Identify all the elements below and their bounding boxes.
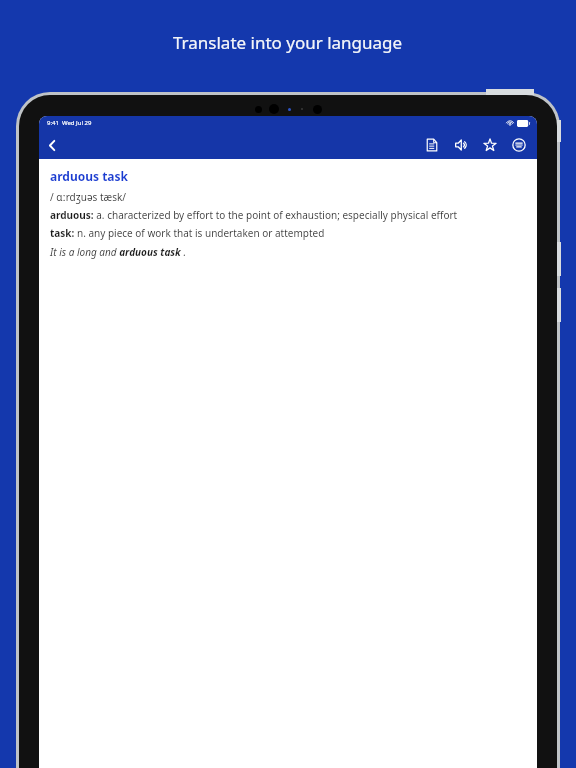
- button[interactable]: Favorite: [478, 133, 502, 157]
- staticText: It is a long and arduous task .: [50, 245, 186, 259]
- button[interactable]: Document: [420, 133, 444, 157]
- button[interactable]: Back: [39, 132, 65, 158]
- button[interactable]: Pronounce: [449, 133, 473, 157]
- button[interactable]: Menu: [507, 133, 531, 157]
- button[interactable]: arduous task: [50, 168, 129, 184]
- staticText: / ɑːrdʒuəs tæsk/: [50, 190, 127, 204]
- staticText: 9:41 Wed Jul 29: [47, 119, 92, 127]
- staticText: task: n. any piece of work that is under…: [50, 226, 325, 240]
- staticText: arduous: a. characterized by effort to t…: [50, 208, 458, 222]
- staticText: Translate into your language: [173, 31, 403, 54]
